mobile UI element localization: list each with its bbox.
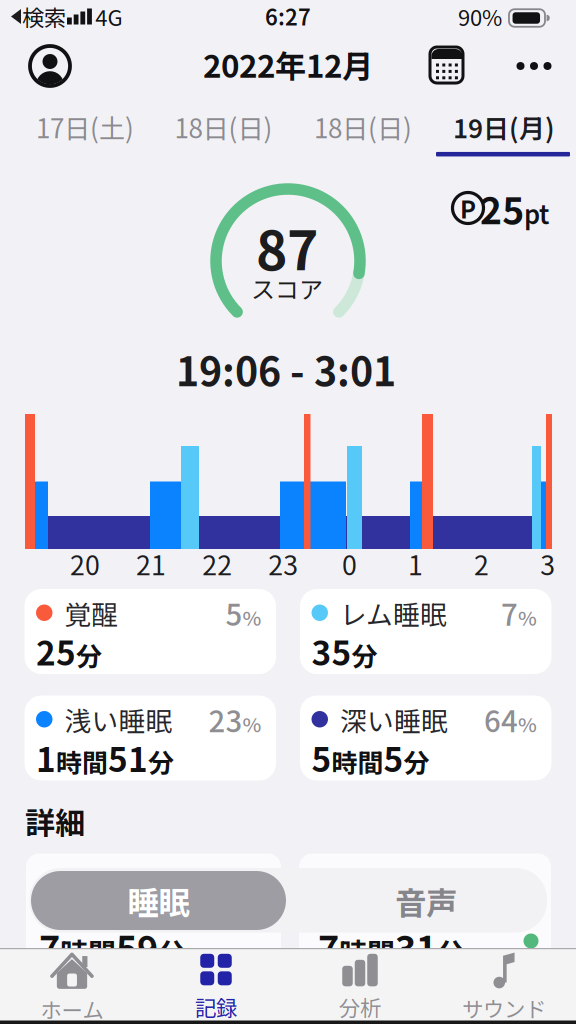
staticText: 1 xyxy=(408,544,423,583)
button[interactable]: 19日(月) xyxy=(432,105,576,149)
staticText: 18日(日) xyxy=(314,108,412,146)
staticText: 19:06 - 3:01 xyxy=(176,340,396,397)
staticText: スコア xyxy=(251,271,323,305)
staticText: 19日(月) xyxy=(453,108,555,146)
button[interactable]: ホーム xyxy=(12,955,132,1021)
staticText: 浅い睡眠 xyxy=(64,700,172,739)
button[interactable]: 分析 xyxy=(300,955,420,1021)
staticText: サウンド xyxy=(462,993,546,1023)
staticText: 7% xyxy=(501,592,537,634)
staticText: 90% xyxy=(458,1,502,32)
staticText: 詳細 xyxy=(25,799,85,843)
button[interactable]: 睡眠 xyxy=(31,871,286,930)
staticText: 20 xyxy=(70,544,100,583)
button[interactable]: 17日(土) xyxy=(13,105,157,149)
staticText: 分析 xyxy=(339,991,381,1022)
staticText: P xyxy=(460,191,476,225)
staticText: 25pt xyxy=(480,182,549,234)
staticText: 検索 xyxy=(22,1,66,32)
staticText: 2 xyxy=(474,544,489,583)
staticText: ホーム xyxy=(40,994,103,1024)
staticText: 7時間31分 xyxy=(318,922,465,972)
staticText: 7時間59分 xyxy=(39,922,186,972)
button[interactable]: プロフィール xyxy=(28,44,72,88)
staticText: 18日(日) xyxy=(174,108,272,146)
staticText: 23% xyxy=(208,699,261,740)
staticText: 3 xyxy=(540,544,555,583)
staticText: 64% xyxy=(484,699,537,740)
button[interactable]: 18日(日) xyxy=(291,105,435,149)
button[interactable]: その他 xyxy=(512,51,556,81)
staticText: 21 xyxy=(136,544,166,583)
staticText: 覚醒 xyxy=(64,594,118,632)
button[interactable]: 18日(日) xyxy=(151,105,295,149)
staticText: 25分 xyxy=(36,627,102,675)
staticText: 6:27 xyxy=(265,0,311,32)
staticText: 2022年12月 xyxy=(203,41,373,87)
button[interactable]: カレンダー xyxy=(431,48,463,84)
staticText: 35分 xyxy=(311,627,377,675)
staticText: 5時間5分 xyxy=(311,734,429,781)
staticText: 4G xyxy=(95,1,122,32)
staticText: 深い睡眠 xyxy=(340,700,448,739)
staticText: 音声 xyxy=(395,878,457,924)
button[interactable]: 記録 xyxy=(156,955,276,1021)
staticText: レム睡眠 xyxy=(340,594,447,632)
button[interactable]: サウンド xyxy=(444,955,564,1021)
staticText: 5% xyxy=(225,592,261,634)
button[interactable]: 音声 xyxy=(356,876,496,926)
staticText: 記録 xyxy=(195,991,237,1022)
staticText: 22 xyxy=(202,544,232,583)
staticText: 0 xyxy=(342,544,357,583)
staticText: 睡眠 xyxy=(127,878,189,923)
staticText: 17日(土) xyxy=(36,108,134,146)
staticText: 87 xyxy=(256,208,318,286)
staticText: 23 xyxy=(268,544,298,583)
staticText: 1時間51分 xyxy=(36,734,174,781)
